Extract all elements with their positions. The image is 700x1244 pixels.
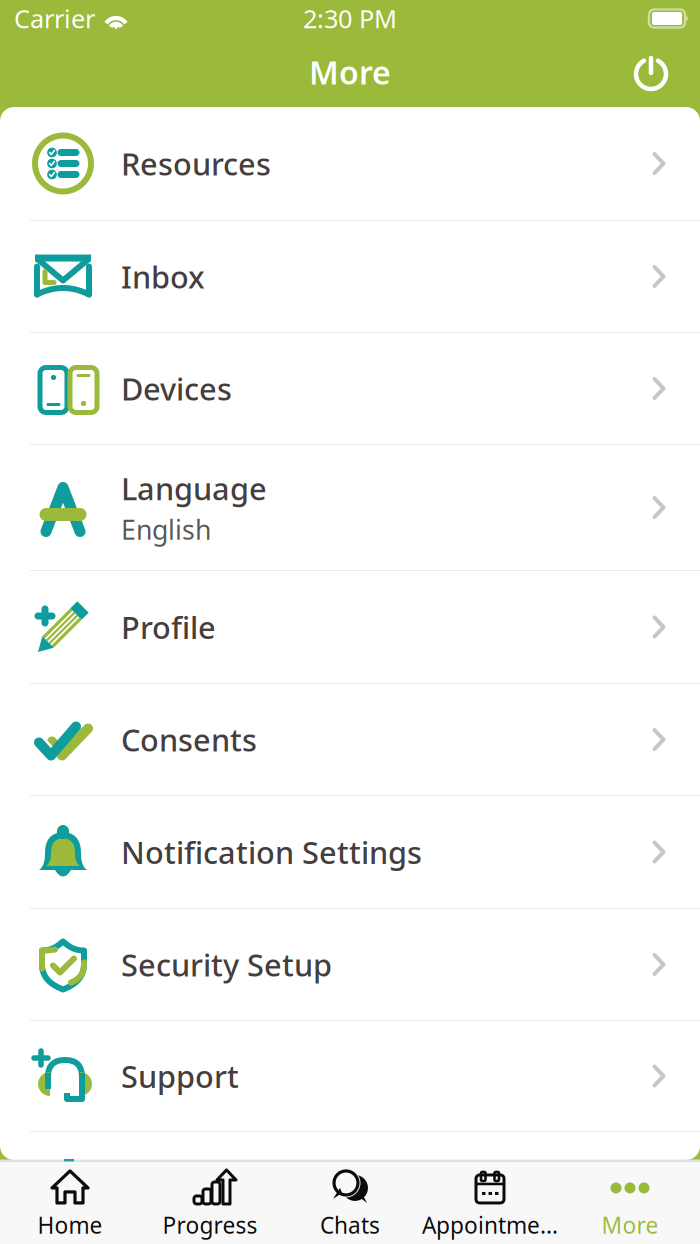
button[interactable]: Chats [280,1159,420,1244]
button[interactable]: Consents [0,684,700,796]
staticText: Support [121,1056,239,1096]
staticText: More [601,1210,658,1240]
staticText: Security Setup [121,944,332,985]
staticText: Home [37,1210,102,1240]
staticText: More [309,51,391,93]
staticText: Inbox [121,256,205,297]
staticText: Progress [162,1210,257,1240]
staticText: Profile [121,607,216,647]
button[interactable]: Progress [140,1159,280,1244]
button[interactable]: Security Setup [0,909,700,1021]
staticText: Resources [121,143,271,184]
button[interactable]: Resources [0,107,700,221]
button[interactable]: Profile [0,571,700,684]
staticText: 2:30 PM [303,2,397,35]
staticText: Language [121,468,267,509]
staticText: Appointme... [422,1210,558,1240]
button[interactable]: Appointme... [420,1159,560,1244]
staticText: Chats [320,1210,380,1240]
button[interactable]: Devices [0,333,700,445]
button[interactable]: Inbox [0,221,700,333]
staticText: Devices [121,368,232,409]
button[interactable]: More [560,1159,700,1244]
staticText: Consents [121,719,257,760]
button[interactable]: Home [0,1159,140,1244]
button[interactable]: Support [0,1021,700,1132]
staticText: Carrier [14,2,95,35]
button[interactable]: Language [0,445,700,571]
staticText: English [121,512,211,547]
staticText: Notification Settings [121,832,422,872]
button[interactable]: Log out [619,46,683,98]
button[interactable]: Notification Settings [0,796,700,909]
